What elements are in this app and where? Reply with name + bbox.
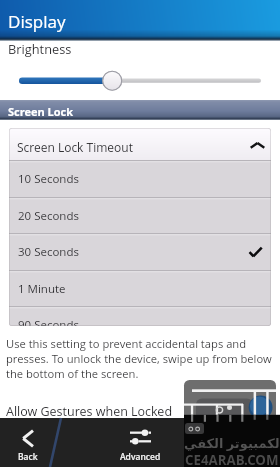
button[interactable]: Screen Lock Timeout [9,128,271,160]
button[interactable]: Advanced [104,418,176,467]
button[interactable]: Brightness slider [0,62,280,100]
staticText: Display [8,10,66,33]
staticText: الكمبيوتر الكفي [184,434,280,452]
button[interactable]: Allow Gestures when Locked [0,401,280,421]
staticText: Advanced [120,451,161,463]
staticText: 30 Seconds [18,244,79,260]
staticText: Screen Lock [8,104,74,119]
staticText: Back [18,451,38,463]
button[interactable]: 20 Seconds [9,197,271,234]
button[interactable]: 30 Seconds [9,233,271,270]
staticText: 90 Seconds [18,317,79,326]
staticText: the bottom of the screen. [6,366,139,381]
staticText: 20 Seconds [18,208,79,224]
staticText: CE4ARAB.COM [185,451,279,467]
staticText: 10 Seconds [18,171,79,187]
button[interactable]: 10 Seconds [9,160,271,197]
button[interactable]: Display [0,0,280,41]
staticText: presses. To unlock the device, swipe up … [6,351,272,366]
staticText: Brightness [8,40,72,57]
other: Selected [249,247,262,258]
staticText: Screen Lock Timeout [17,139,133,155]
button[interactable]: 1 Minute [9,270,271,307]
button[interactable]: Back [0,418,56,467]
other: Collapse [249,137,266,154]
staticText: 1 Minute [18,281,66,297]
button[interactable]: 90 Seconds [9,306,271,326]
staticText: Allow Gestures when Locked [6,403,173,420]
staticText: Use this setting to prevent accidental t… [6,336,247,351]
